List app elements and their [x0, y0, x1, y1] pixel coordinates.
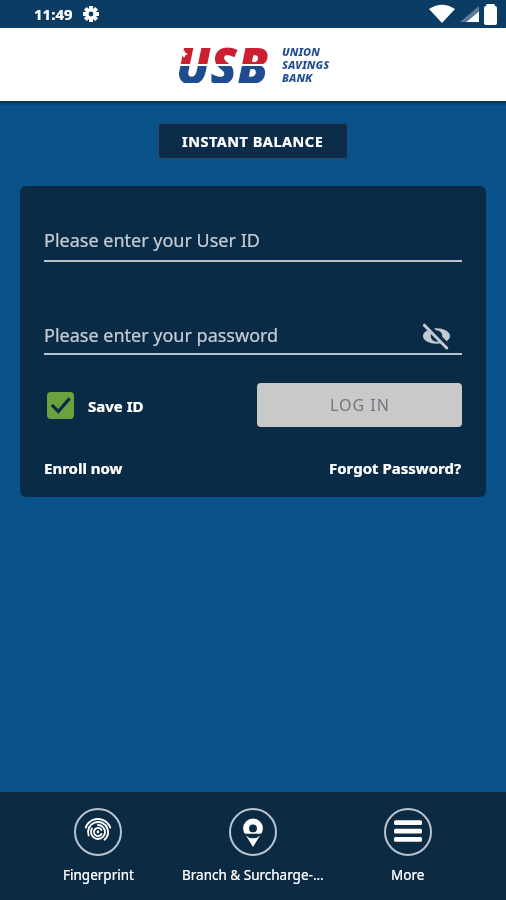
- button[interactable]: Save ID: [47, 392, 144, 419]
- button[interactable]: Forgot Password?: [329, 458, 462, 478]
- staticText: Branch & Surcharge-...: [182, 866, 324, 884]
- staticText: INSTANT BALANCE: [182, 131, 324, 151]
- staticText: Fingerprint: [63, 866, 134, 884]
- button[interactable]: More: [333, 792, 483, 900]
- button[interactable]: Enroll now: [44, 458, 123, 478]
- button[interactable]: Fingerprint: [23, 792, 173, 900]
- button[interactable]: [423, 324, 450, 348]
- staticText: 11:49: [34, 4, 73, 24]
- button[interactable]: Please enter your password: [44, 323, 462, 355]
- button[interactable]: Branch & Surcharge-...: [178, 792, 328, 900]
- staticText: More: [391, 866, 425, 884]
- staticText: Save ID: [88, 396, 144, 416]
- staticText: LOG IN: [330, 394, 390, 416]
- button[interactable]: LOG IN: [257, 383, 462, 427]
- button[interactable]: INSTANT BALANCE: [158, 123, 348, 159]
- button[interactable]: Please enter your User ID: [44, 228, 462, 262]
- staticText: Please enter your User ID: [44, 228, 260, 253]
- staticText: Please enter your password: [44, 323, 279, 348]
- staticText: UNION SAVINGS BANK: [282, 44, 330, 85]
